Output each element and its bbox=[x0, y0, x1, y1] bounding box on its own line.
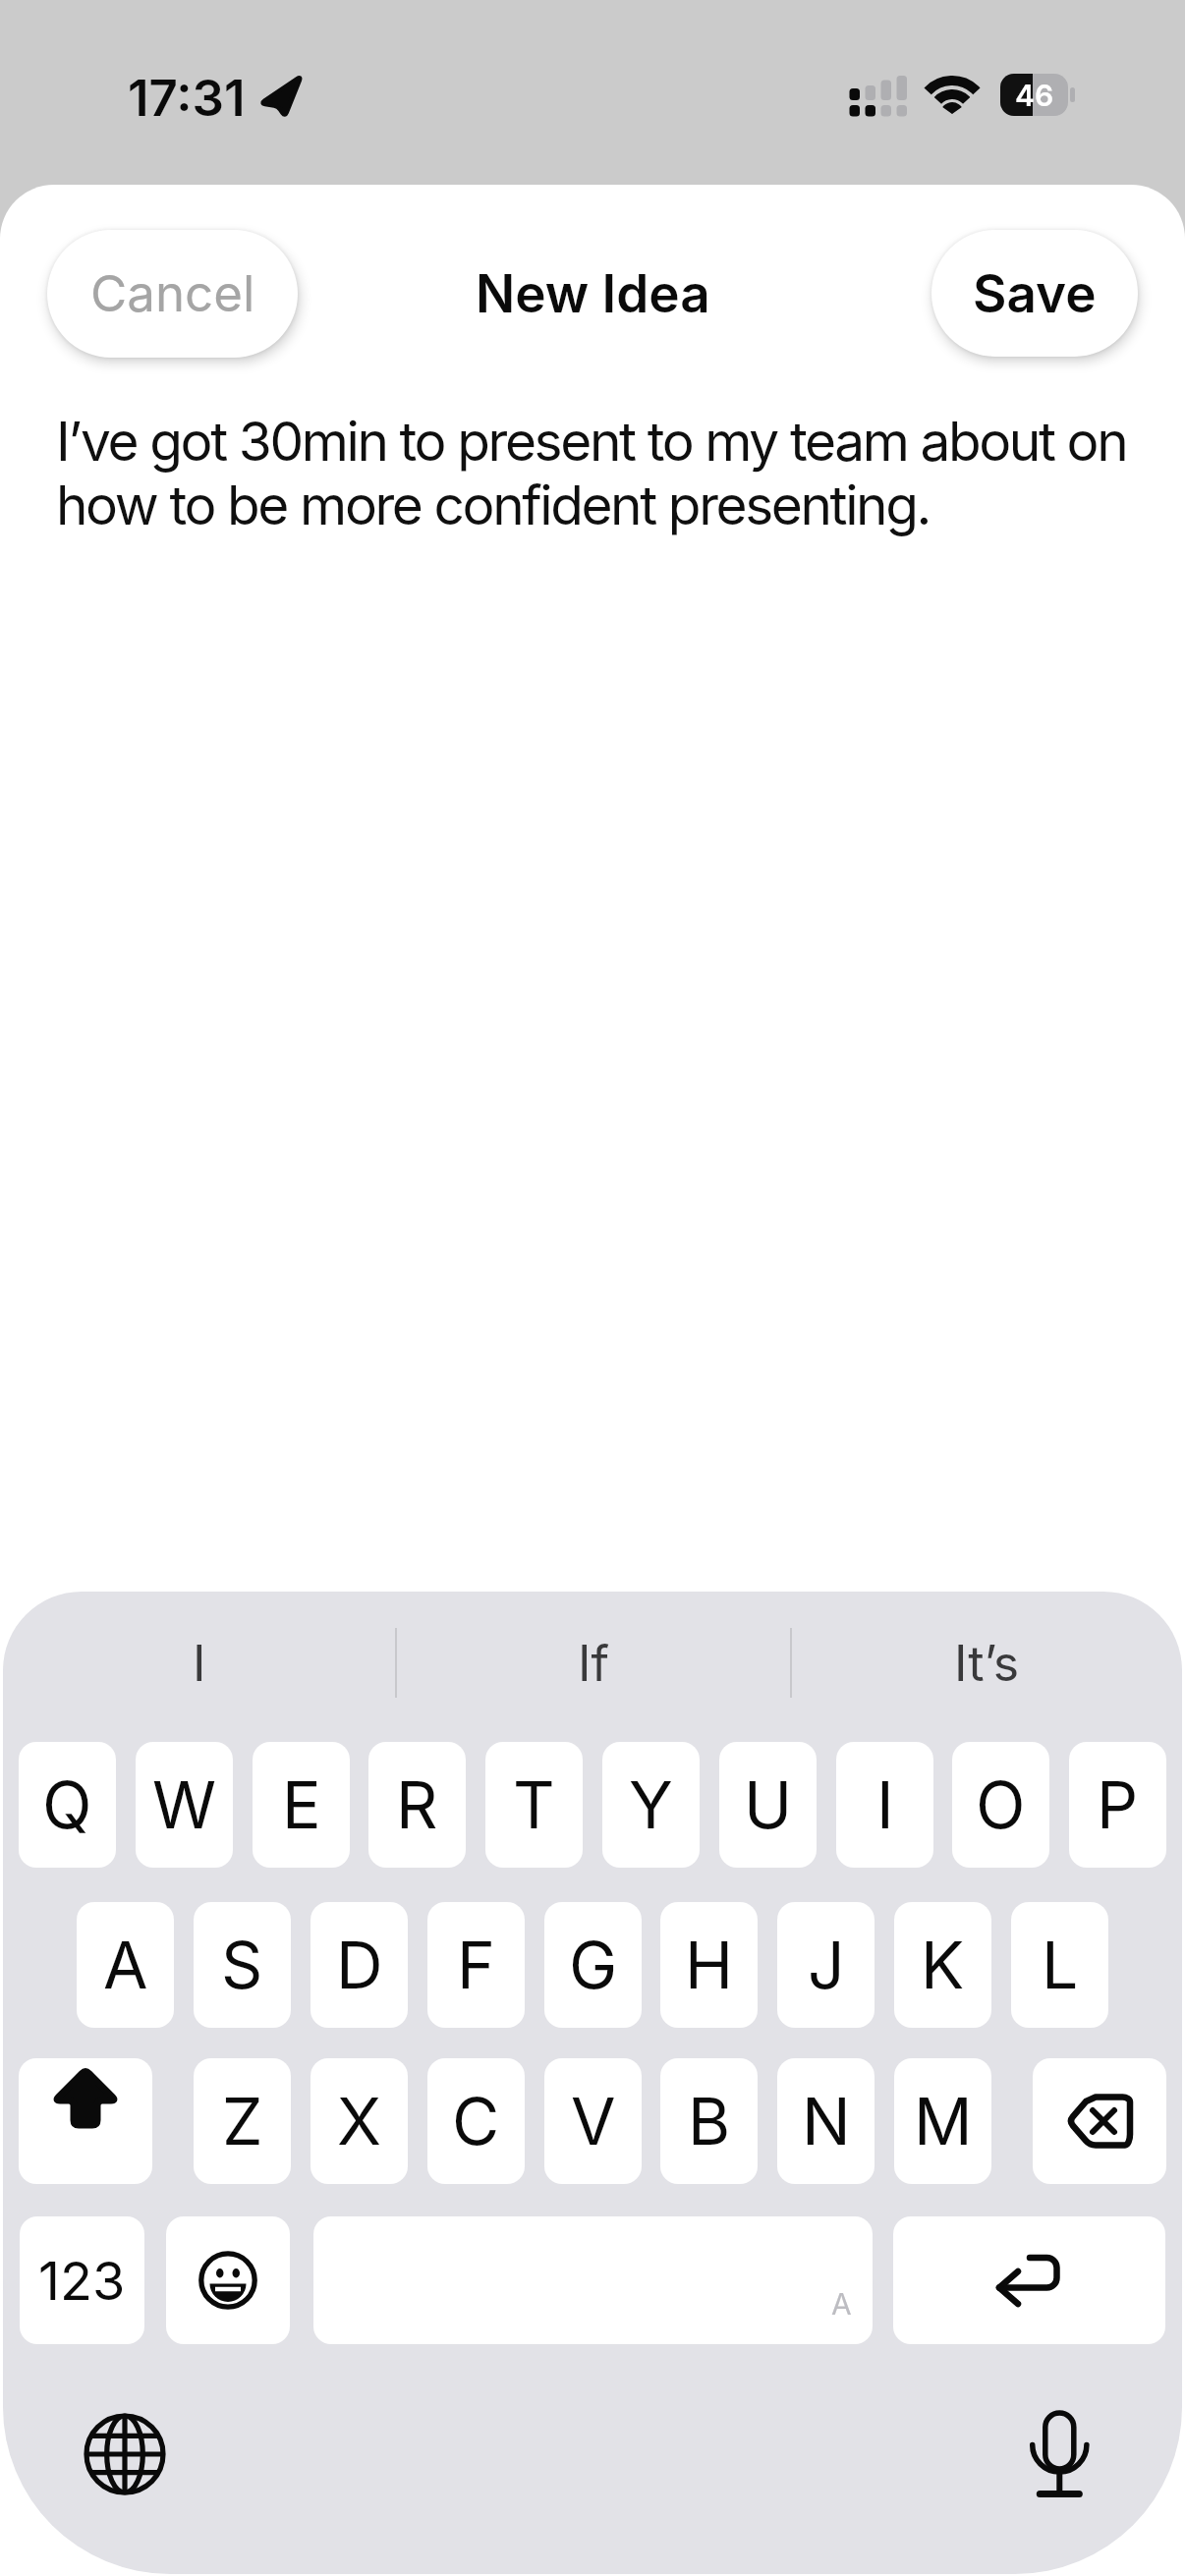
staticText: O bbox=[976, 1765, 1026, 1844]
button[interactable]: Y bbox=[602, 1742, 700, 1868]
staticText: K bbox=[921, 1926, 965, 2004]
button[interactable]: M bbox=[894, 2058, 991, 2184]
staticText: I’ve got 30min to present to my team abo… bbox=[56, 409, 1127, 537]
staticText: G bbox=[569, 1926, 618, 2004]
button[interactable]: It’s bbox=[792, 1611, 1182, 1714]
staticText: C bbox=[452, 2082, 500, 2160]
button[interactable]: A bbox=[77, 1902, 174, 2028]
button[interactable]: Save bbox=[931, 230, 1138, 357]
button[interactable] bbox=[1026, 2407, 1095, 2501]
button[interactable]: V bbox=[544, 2058, 642, 2184]
button[interactable]: J bbox=[777, 1902, 875, 2028]
staticText: Cancel bbox=[90, 263, 255, 324]
staticText: 46 bbox=[1015, 78, 1054, 113]
staticText: A bbox=[831, 2286, 852, 2322]
button[interactable]: K bbox=[894, 1902, 991, 2028]
staticText: J bbox=[808, 1926, 845, 2004]
button[interactable]: C bbox=[427, 2058, 525, 2184]
staticText: Q bbox=[42, 1765, 92, 1844]
button[interactable] bbox=[313, 2216, 873, 2344]
button[interactable]: H bbox=[660, 1902, 758, 2028]
staticText: H bbox=[685, 1926, 734, 2004]
button[interactable]: 123 bbox=[20, 2216, 144, 2344]
staticText: R bbox=[396, 1765, 438, 1844]
button[interactable] bbox=[893, 2216, 1165, 2344]
button[interactable] bbox=[82, 2411, 168, 2497]
staticText: I bbox=[193, 1634, 206, 1693]
staticText: A bbox=[103, 1926, 148, 2004]
button[interactable] bbox=[1033, 2058, 1166, 2184]
button[interactable] bbox=[19, 2058, 152, 2184]
staticText: W bbox=[152, 1765, 217, 1844]
staticText: D bbox=[336, 1926, 383, 2004]
staticText: I bbox=[876, 1765, 894, 1844]
button[interactable]: S bbox=[194, 1902, 291, 2028]
staticText: L bbox=[1042, 1926, 1079, 2004]
button[interactable]: T bbox=[485, 1742, 583, 1868]
button[interactable]: P bbox=[1069, 1742, 1166, 1868]
button[interactable]: I bbox=[3, 1611, 395, 1714]
button[interactable]: O bbox=[952, 1742, 1049, 1868]
button[interactable]: F bbox=[427, 1902, 525, 2028]
staticText: Save bbox=[973, 262, 1097, 325]
staticText: S bbox=[221, 1926, 263, 2004]
button[interactable] bbox=[166, 2216, 290, 2344]
staticText: X bbox=[337, 2082, 382, 2160]
staticText: F bbox=[457, 1926, 495, 2004]
staticText: 17:31 bbox=[128, 68, 246, 123]
button[interactable]: E bbox=[253, 1742, 350, 1868]
button[interactable]: L bbox=[1011, 1902, 1108, 2028]
button[interactable]: Q bbox=[19, 1742, 116, 1868]
button[interactable]: D bbox=[310, 1902, 408, 2028]
staticText: E bbox=[282, 1765, 321, 1844]
button[interactable]: R bbox=[368, 1742, 466, 1868]
staticText: New Idea bbox=[476, 262, 710, 325]
staticText: U bbox=[744, 1765, 793, 1844]
staticText: It’s bbox=[954, 1634, 1020, 1693]
staticText: M bbox=[914, 2082, 973, 2160]
staticText: V bbox=[571, 2082, 616, 2160]
button[interactable]: U bbox=[719, 1742, 817, 1868]
staticText: 123 bbox=[38, 2249, 126, 2313]
button[interactable]: G bbox=[544, 1902, 642, 2028]
staticText: B bbox=[688, 2082, 731, 2160]
button[interactable]: N bbox=[777, 2058, 875, 2184]
button[interactable]: X bbox=[310, 2058, 408, 2184]
staticText: P bbox=[1097, 1765, 1139, 1844]
button[interactable]: B bbox=[660, 2058, 758, 2184]
button[interactable]: I bbox=[836, 1742, 933, 1868]
button[interactable]: If bbox=[397, 1611, 790, 1714]
button[interactable]: W bbox=[136, 1742, 233, 1868]
staticText: Y bbox=[629, 1765, 673, 1844]
staticText: N bbox=[802, 2082, 851, 2160]
staticText: Z bbox=[222, 2082, 263, 2160]
button[interactable]: Z bbox=[194, 2058, 291, 2184]
staticText: If bbox=[578, 1634, 609, 1693]
staticText: T bbox=[513, 1765, 555, 1844]
button[interactable]: Cancel bbox=[47, 230, 298, 358]
